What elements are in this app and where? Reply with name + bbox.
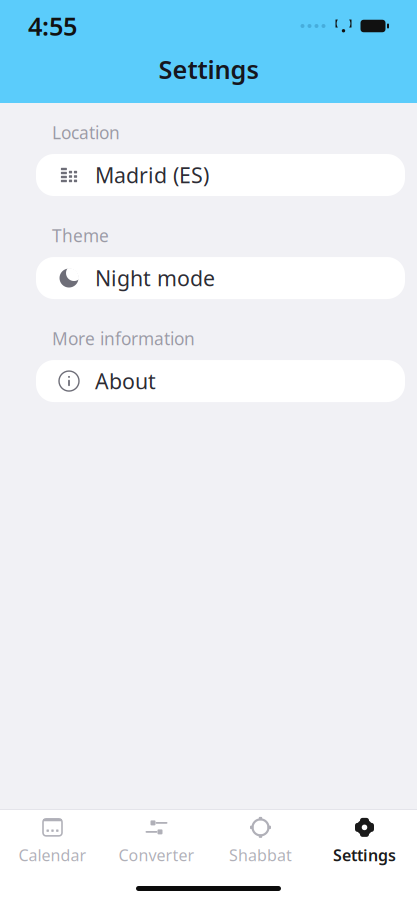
button[interactable]: Converter — [104, 818, 208, 864]
staticText: About — [95, 367, 156, 395]
button[interactable]: Settings — [312, 818, 416, 864]
button[interactable]: About — [36, 360, 405, 402]
button[interactable]: Madrid (ES) — [36, 154, 405, 196]
staticText: 4:55 — [28, 9, 77, 43]
staticText: Theme — [52, 224, 109, 247]
staticText: Shabbat — [229, 844, 292, 866]
staticText: Location — [52, 121, 120, 144]
staticText: Night mode — [95, 264, 215, 292]
staticText: Converter — [118, 844, 194, 866]
staticText: Madrid (ES) — [95, 161, 209, 189]
staticText: Calendar — [18, 844, 86, 866]
button[interactable]: Calendar — [0, 818, 104, 864]
button[interactable]: Night mode — [36, 257, 405, 299]
staticText: Settings — [158, 52, 258, 86]
button[interactable]: Shabbat — [208, 818, 312, 864]
staticText: Settings — [333, 844, 396, 866]
staticText: More information — [52, 327, 195, 350]
